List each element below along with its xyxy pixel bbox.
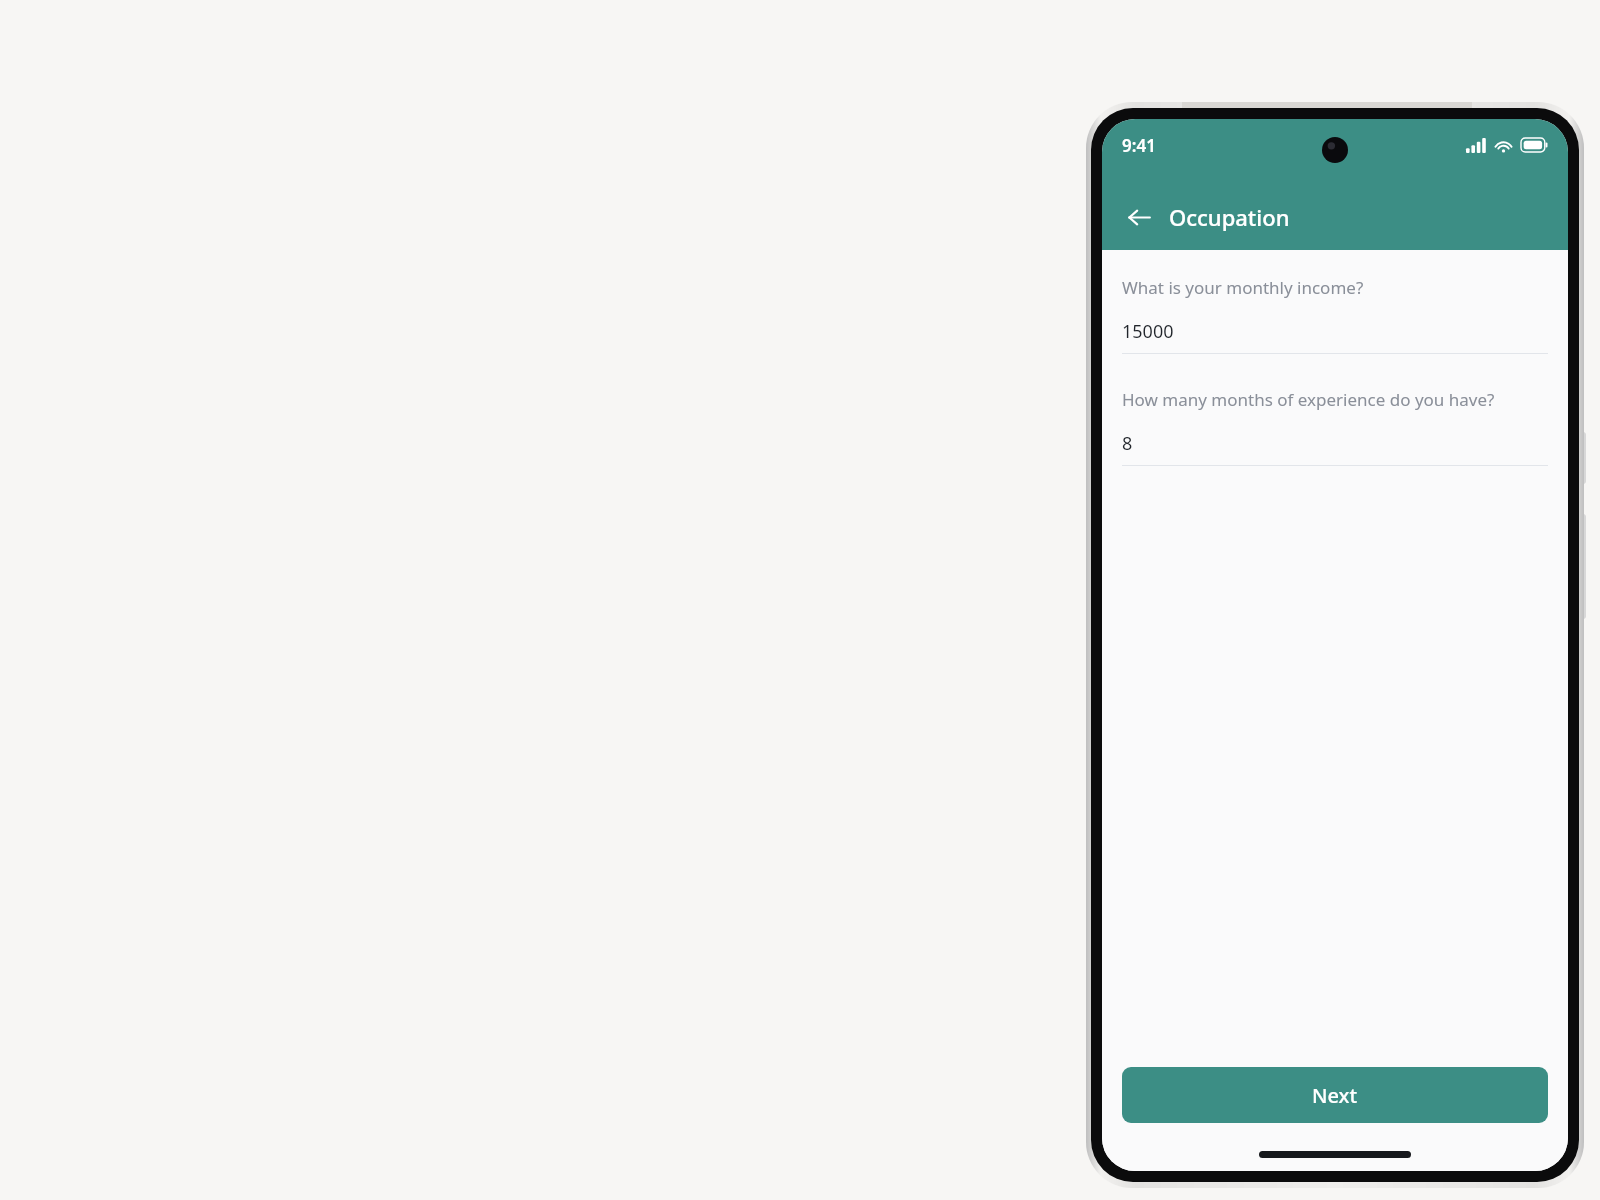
staticText: 15000 [1122, 319, 1174, 344]
staticText: 9:41 [1122, 134, 1156, 157]
staticText: What is your monthly income? [1122, 276, 1364, 299]
staticText: 8 [1122, 431, 1133, 456]
button[interactable]: What is your monthly income? [1122, 276, 1548, 354]
staticText: Occupation [1169, 202, 1290, 232]
staticText: How many months of experience do you hav… [1122, 388, 1495, 411]
staticText: Next [1312, 1082, 1358, 1109]
button[interactable]: Back [1118, 196, 1160, 238]
button[interactable]: How many months of experience do you hav… [1122, 388, 1548, 466]
button[interactable]: Next [1122, 1067, 1548, 1123]
